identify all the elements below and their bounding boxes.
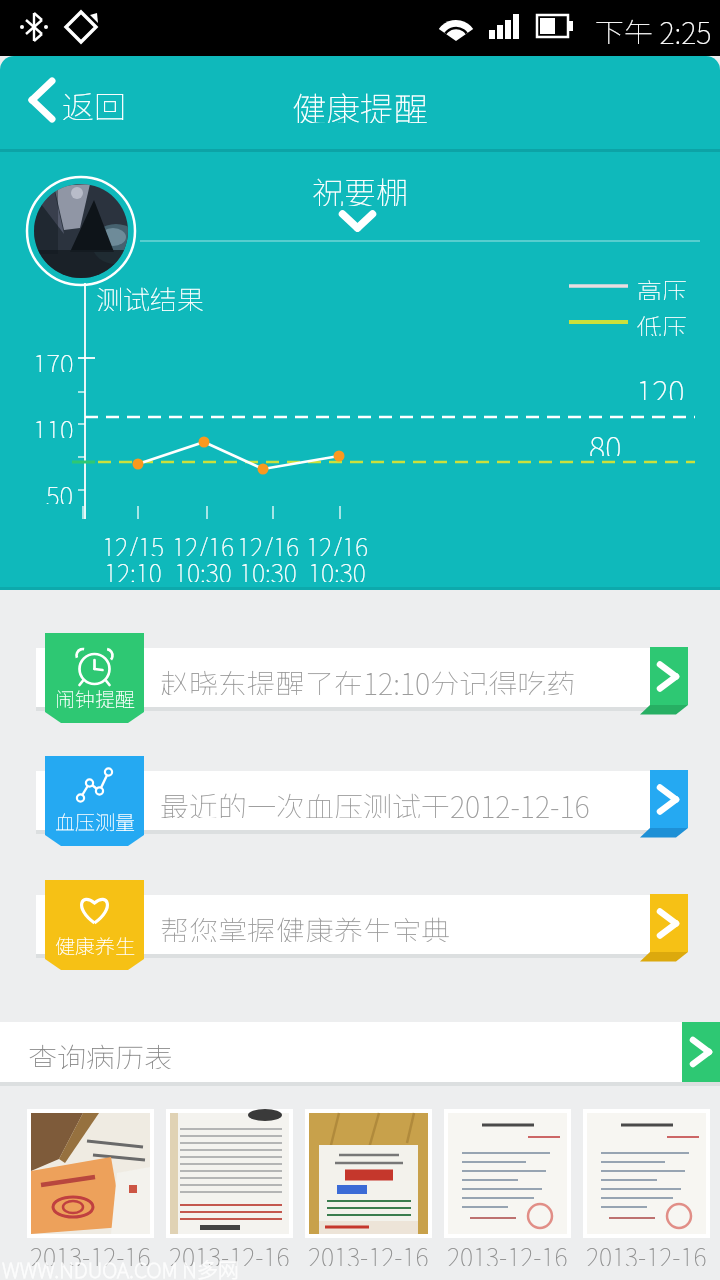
staticText: WWW.NDUOA.COM N多网 (2, 1254, 239, 1280)
staticText: 120 (636, 368, 685, 400)
button[interactable] (0, 1022, 720, 1082)
button[interactable] (650, 647, 688, 705)
staticText: 下午 2:25 (595, 10, 712, 44)
staticText: 返回 (62, 82, 127, 120)
button[interactable] (36, 895, 650, 954)
button[interactable] (166, 1109, 293, 1238)
staticText: 闹钟提醒 (55, 684, 135, 710)
button[interactable] (20, 72, 150, 132)
staticText: 高压 (637, 272, 688, 300)
staticText: 赵晓东提醒了在12:10分记得吃药 (160, 661, 576, 695)
staticText: 10:30 (308, 554, 366, 582)
staticText: 12/15 (102, 528, 165, 556)
staticText: 12/16 (172, 528, 235, 556)
staticText: 2013-12-16 (308, 1238, 429, 1266)
staticText: 110 (33, 410, 74, 438)
button[interactable] (583, 1109, 710, 1238)
button[interactable] (650, 894, 688, 952)
staticText: 80 (589, 424, 622, 456)
staticText: 祝要棚 (312, 168, 409, 206)
staticText: 170 (33, 344, 74, 372)
button[interactable] (36, 648, 650, 707)
staticText: 帮您掌握健康养生宝典 (160, 908, 451, 942)
button[interactable] (295, 165, 425, 237)
staticText: 低压 (637, 308, 688, 336)
staticText: 测试结果 (96, 279, 204, 311)
staticText: 10:30 (174, 554, 232, 582)
staticText: 2013-12-16 (586, 1238, 707, 1266)
button[interactable]: 血压测量 (45, 756, 144, 846)
staticText: 健康提醒 (292, 83, 428, 123)
staticText: 2013-12-16 (169, 1238, 290, 1266)
button[interactable]: 闹钟提醒 (45, 633, 144, 723)
button[interactable] (444, 1109, 571, 1238)
staticText: 12/16 (306, 528, 369, 556)
staticText: 2013-12-16 (30, 1238, 151, 1266)
button[interactable] (36, 771, 650, 830)
staticText: 12:10 (104, 554, 162, 582)
staticText: 健康养生 (55, 931, 135, 957)
staticText: 12/16 (237, 528, 300, 556)
staticText: 10:30 (239, 554, 297, 582)
staticText: 最近的一次血压测试于2012-12-16 (160, 784, 590, 818)
button[interactable] (682, 1022, 720, 1082)
staticText: 50 (46, 476, 74, 504)
button[interactable] (27, 1109, 154, 1238)
staticText: 查询病历表 (28, 1035, 174, 1069)
button[interactable] (305, 1109, 432, 1238)
button[interactable] (650, 770, 688, 828)
staticText: 2013-12-16 (447, 1238, 568, 1266)
staticText: 血压测量 (55, 807, 135, 833)
button[interactable]: 健康养生 (45, 880, 144, 970)
